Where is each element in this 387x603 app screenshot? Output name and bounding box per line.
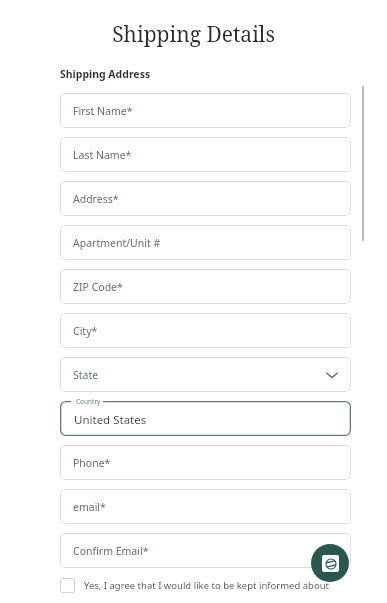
- staticText: Shipping Address: [60, 67, 151, 81]
- button[interactable]: Apartment/Unit #: [60, 225, 351, 260]
- staticText: Confirm Email*: [73, 544, 149, 558]
- button[interactable]: First Name*: [60, 93, 351, 128]
- button[interactable]: Country: [60, 401, 351, 436]
- staticText: Country: [76, 397, 101, 406]
- button[interactable]: Sustainability info: [311, 544, 349, 582]
- staticText: State: [73, 368, 99, 382]
- button[interactable]: email*: [60, 489, 351, 524]
- other: Open state dropdown: [325, 368, 339, 382]
- button[interactable]: Address*: [60, 181, 351, 216]
- staticText: Address*: [73, 192, 119, 206]
- staticText: First Name*: [73, 104, 133, 118]
- button[interactable]: State: [60, 357, 351, 392]
- staticText: Shipping Details: [0, 20, 387, 49]
- staticText: City*: [73, 324, 98, 338]
- button[interactable]: City*: [60, 313, 351, 348]
- staticText: email*: [73, 500, 106, 514]
- button[interactable]: Last Name*: [60, 137, 351, 172]
- staticText: United States: [74, 412, 147, 428]
- button[interactable]: Yes, I agree that I would like to be kep…: [60, 578, 351, 593]
- staticText: Last Name*: [73, 148, 132, 162]
- button[interactable]: Confirm Email*: [60, 533, 351, 568]
- staticText: ZIP Code*: [73, 280, 123, 294]
- button[interactable]: ZIP Code*: [60, 269, 351, 304]
- staticText: Phone*: [73, 456, 111, 470]
- staticText: Yes, I agree that I would like to be kep…: [84, 579, 330, 592]
- staticText: Apartment/Unit #: [73, 236, 161, 250]
- button[interactable]: Phone*: [60, 445, 351, 480]
